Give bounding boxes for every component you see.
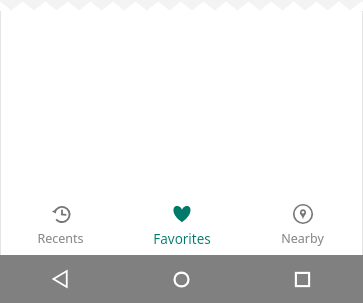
staticText: Favorites (153, 230, 211, 248)
staticText: Recents (37, 230, 84, 247)
staticText: Nearby (281, 230, 324, 247)
button[interactable]: Favorites (121, 194, 242, 255)
button[interactable]: Nearby (242, 194, 363, 255)
button[interactable]: Recents (0, 194, 121, 255)
button[interactable]: Back (0, 255, 121, 303)
button[interactable]: Recent apps (242, 255, 363, 303)
button[interactable]: Home (121, 255, 242, 303)
